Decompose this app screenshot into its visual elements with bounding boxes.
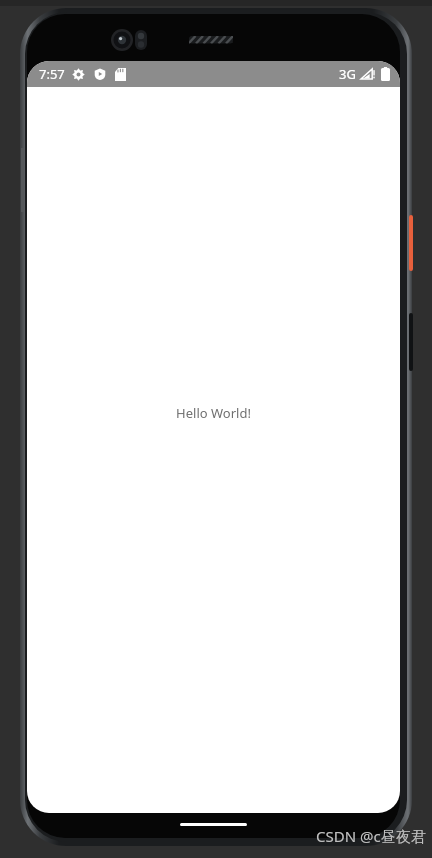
other: Volume [409,313,413,371]
staticText: Hello World! [176,404,251,422]
staticText: 7:57 [39,65,65,83]
staticText: 3G [339,65,356,83]
staticText: CSDN @c昼夜君 [316,826,426,846]
other: Power [409,215,413,271]
